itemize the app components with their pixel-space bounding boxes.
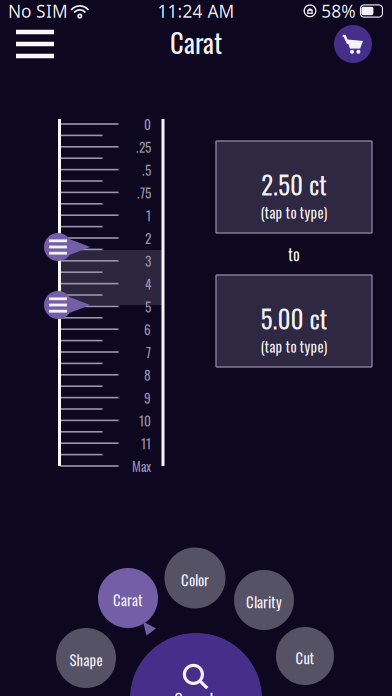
button[interactable]: Color [164,547,225,608]
staticText: 7 [146,342,151,362]
staticText: Carat [170,22,222,62]
staticText: 3 [145,251,151,271]
staticText: 11 [141,433,151,453]
staticText: .5 [142,160,151,179]
staticText: Carat [113,589,143,610]
staticText: 5 [145,296,151,316]
staticText: 4 [145,274,151,293]
button[interactable]: Carat [98,568,158,628]
staticText: No SIM [8,0,68,22]
staticText: (tap to type) [260,201,327,223]
staticText: Max [132,456,151,476]
staticText: Search [174,686,217,696]
button[interactable]: 5.00 ct [216,275,372,367]
button[interactable]: Shape [56,628,116,688]
button[interactable]: Menu [9,24,61,64]
staticText: 1 [146,205,151,225]
staticText: (tap to type) [260,335,327,357]
staticText: 2.50 ct [261,165,327,203]
staticText: Cut [295,647,314,668]
staticText: 8 [144,365,151,385]
staticText: Color [181,569,209,590]
staticText: to [288,242,300,266]
staticText: 9 [144,388,151,407]
staticText: .25 [136,137,151,157]
staticText: 6 [144,319,151,339]
staticText: 11:24 AM [157,0,234,22]
staticText: Clarity [246,591,282,612]
staticText: 10 [139,410,151,430]
staticText: Shape [69,649,102,670]
staticText: 2 [145,228,151,248]
button[interactable]: Shopping cart [331,22,375,66]
staticText: 5.00 ct [260,299,327,337]
button[interactable]: 2.50 ct [216,141,372,233]
button[interactable]: Clarity [234,570,294,630]
staticText: 0 [144,114,151,134]
staticText: .75 [137,182,151,202]
button[interactable]: Cut [276,627,334,685]
staticText: 58% [321,0,355,22]
button[interactable]: Search [130,633,262,696]
